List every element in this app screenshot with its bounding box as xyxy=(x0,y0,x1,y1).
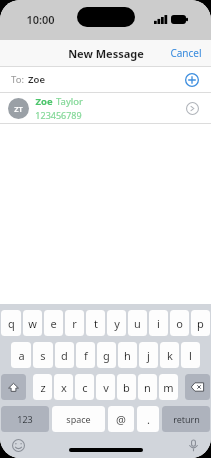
button[interactable]: p xyxy=(191,310,210,336)
staticText: t xyxy=(94,316,98,331)
staticText: g xyxy=(103,348,110,363)
staticText: l xyxy=(189,348,192,363)
button[interactable]: Dictation xyxy=(183,435,203,455)
button[interactable]: l xyxy=(181,342,200,368)
button[interactable]: m xyxy=(159,374,178,400)
staticText: e xyxy=(50,316,57,331)
staticText: d xyxy=(61,348,68,363)
staticText: b xyxy=(123,380,130,395)
button[interactable]: w xyxy=(23,310,42,336)
button[interactable]: a xyxy=(11,342,31,368)
staticText: z xyxy=(40,380,46,395)
staticText: space xyxy=(66,413,91,425)
button[interactable]: d xyxy=(55,342,74,368)
staticText: p xyxy=(197,316,204,331)
staticText: Zoe xyxy=(35,95,53,108)
button[interactable]: Shift xyxy=(1,374,26,400)
button[interactable]: s xyxy=(33,342,53,368)
staticText: Taylor xyxy=(56,95,83,108)
button[interactable]: h xyxy=(118,342,137,368)
staticText: c xyxy=(82,380,88,395)
button[interactable]: Add contact xyxy=(181,69,203,91)
staticText: Cancel xyxy=(170,46,202,60)
staticText: a xyxy=(18,348,25,363)
button[interactable]: q xyxy=(1,310,21,336)
button[interactable]: y xyxy=(107,310,126,336)
button[interactable]: ZT xyxy=(0,93,211,123)
staticText: u xyxy=(134,316,141,331)
staticText: o xyxy=(176,316,183,331)
staticText: ZT xyxy=(14,104,23,114)
button[interactable]: r xyxy=(65,310,84,336)
staticText: s xyxy=(40,348,46,363)
button[interactable]: b xyxy=(117,374,136,400)
button[interactable]: Backspace xyxy=(185,374,210,400)
staticText: q xyxy=(8,316,15,331)
staticText: To: xyxy=(11,73,24,86)
staticText: 10:00 xyxy=(26,12,55,27)
staticText: f xyxy=(84,348,88,363)
staticText: m xyxy=(163,380,174,395)
staticText: New Message xyxy=(68,46,144,61)
button[interactable]: i xyxy=(149,310,168,336)
button[interactable]: x xyxy=(54,374,73,400)
staticText: r xyxy=(72,316,77,331)
button[interactable]: 123 xyxy=(1,406,49,432)
button[interactable]: return xyxy=(162,406,210,432)
button[interactable]: t xyxy=(86,310,105,336)
staticText: h xyxy=(124,348,131,363)
button[interactable]: Contact info xyxy=(181,97,203,119)
staticText: n xyxy=(144,380,151,395)
staticText: w xyxy=(28,316,37,331)
staticText: j xyxy=(147,348,150,363)
button[interactable]: v xyxy=(96,374,115,400)
staticText: i xyxy=(157,316,160,331)
button[interactable]: g xyxy=(97,342,116,368)
button[interactable]: j xyxy=(139,342,158,368)
button[interactable]: Cancel xyxy=(161,42,211,64)
button[interactable]: c xyxy=(75,374,94,400)
staticText: @ xyxy=(116,412,126,427)
staticText: return xyxy=(173,413,200,425)
button[interactable]: o xyxy=(170,310,189,336)
button[interactable]: z xyxy=(33,374,52,400)
button[interactable]: To: xyxy=(0,67,211,92)
button[interactable]: space xyxy=(52,406,105,432)
staticText: v xyxy=(103,380,109,395)
staticText: x xyxy=(61,380,67,395)
staticText: 123 xyxy=(17,413,33,425)
staticText: k xyxy=(167,348,173,363)
staticText: y xyxy=(114,316,120,331)
button[interactable]: n xyxy=(138,374,157,400)
staticText: Zoe xyxy=(28,73,45,86)
button[interactable]: u xyxy=(128,310,147,336)
button[interactable]: e xyxy=(44,310,63,336)
staticText: . xyxy=(147,412,150,427)
button[interactable]: @ xyxy=(108,406,134,432)
button[interactable]: k xyxy=(160,342,179,368)
button[interactable]: f xyxy=(76,342,95,368)
staticText: 123456789 xyxy=(35,109,82,121)
button[interactable]: Emoji xyxy=(8,435,28,455)
button[interactable]: . xyxy=(137,406,159,432)
